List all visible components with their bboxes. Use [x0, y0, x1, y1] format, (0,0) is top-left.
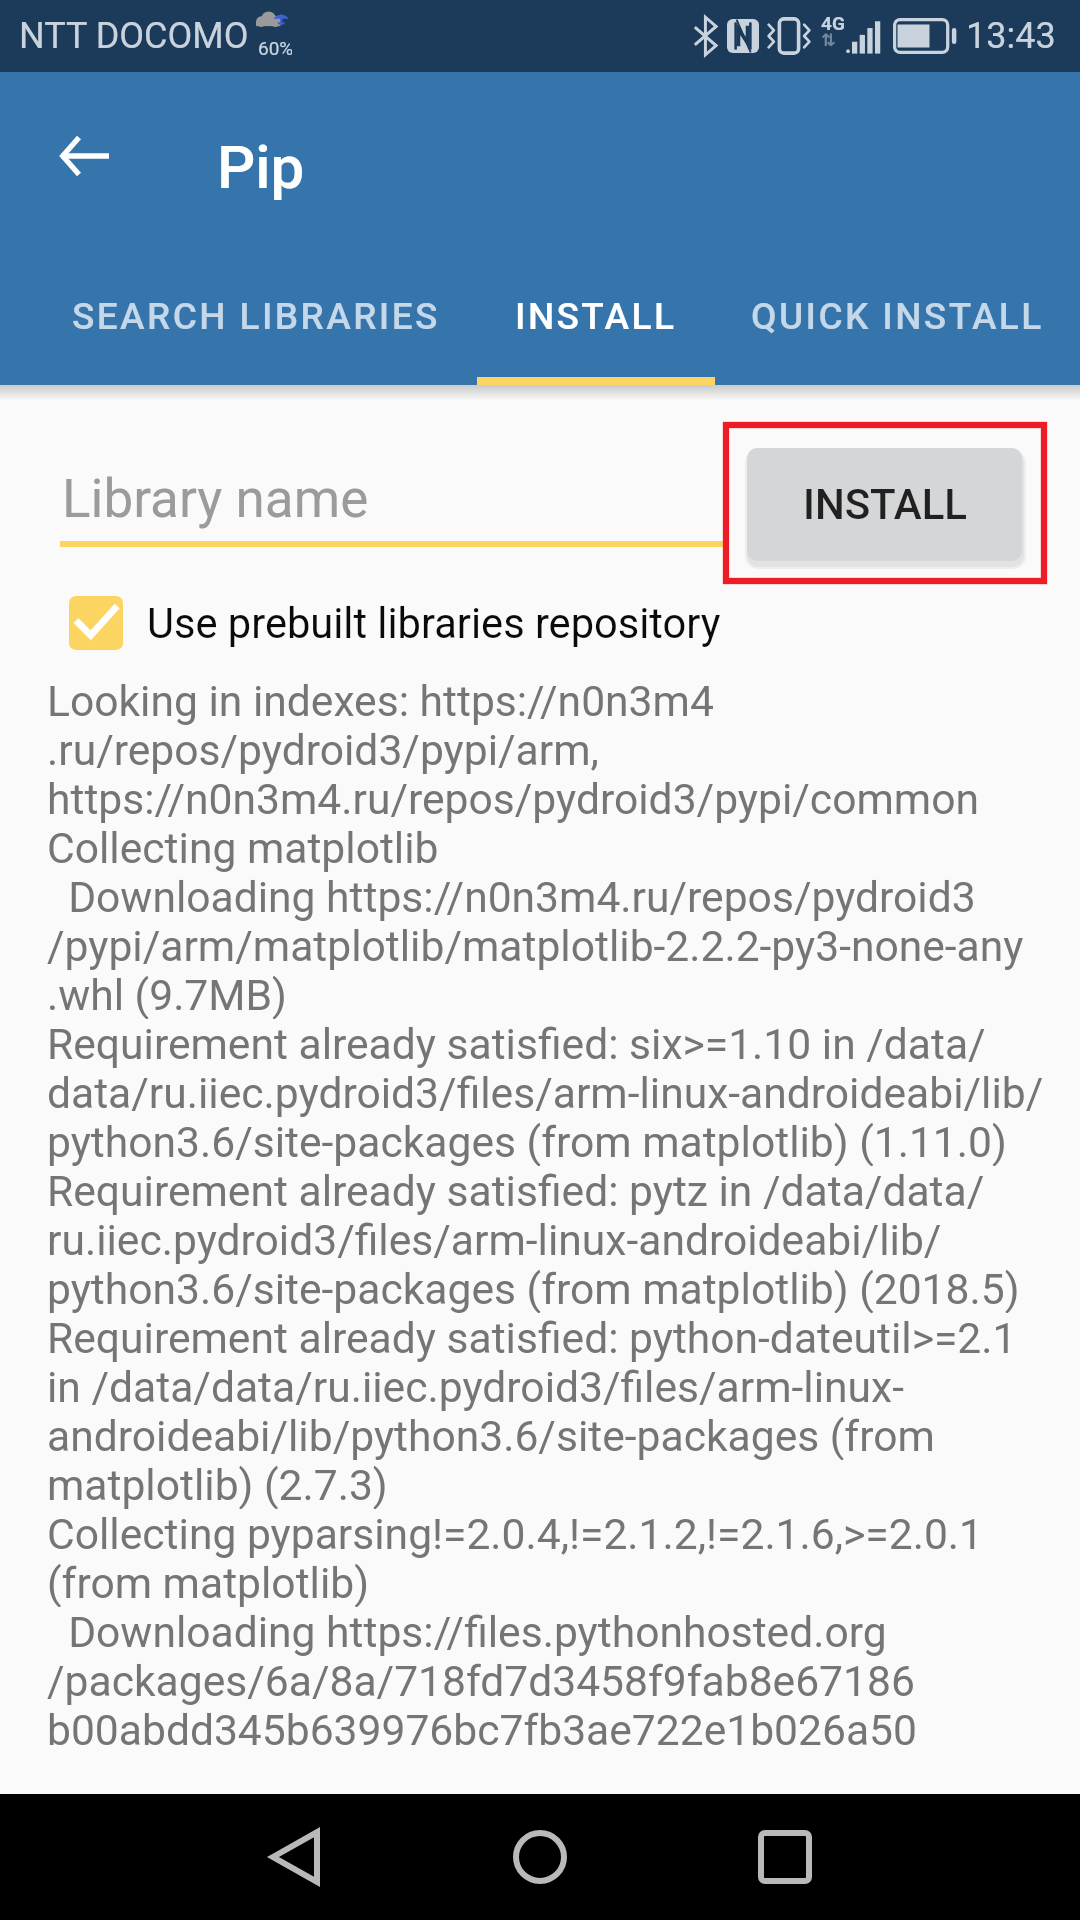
button[interactable]: QUICK INSTALL: [714, 252, 1080, 385]
staticText: INSTALL: [515, 295, 677, 338]
staticText: Library name: [62, 468, 369, 530]
staticText: Downloading https://files.pythonhosted.o…: [47, 1607, 887, 1656]
button[interactable]: Recent apps: [730, 1802, 840, 1912]
staticText: Collecting matplotlib: [47, 823, 439, 872]
staticText: 60%: [258, 37, 292, 59]
staticText: matplotlib) (2.7.3): [47, 1460, 388, 1509]
button[interactable]: Navigate up: [29, 101, 139, 211]
staticText: .ru/repos/pydroid3/pypi/arm,: [47, 725, 599, 774]
staticText: /pypi/arm/matplotlib/matplotlib-2.2.2-py…: [47, 921, 1024, 970]
button[interactable]: INSTALL: [747, 448, 1022, 561]
button[interactable]: SEARCH LIBRARIES: [33, 252, 479, 385]
button[interactable]: Back: [240, 1802, 350, 1912]
staticText: .whl (9.7MB): [47, 970, 287, 1019]
staticText: Collecting pyparsing!=2.0.4,!=2.1.2,!=2.…: [47, 1509, 984, 1558]
staticText: https://n0n3m4.ru/repos/pydroid3/pypi/co…: [47, 774, 979, 823]
staticText: Requirement already satisfied: python-da…: [47, 1313, 1017, 1362]
button[interactable]: Use prebuilt libraries repository: [69, 593, 721, 653]
staticText: data/ru.iiec.pydroid3/files/arm-linux-an…: [47, 1068, 1044, 1117]
button[interactable]: INSTALL: [477, 252, 715, 385]
staticText: python3.6/site-packages (from matplotlib…: [47, 1117, 1007, 1166]
staticText: ⇅: [821, 30, 836, 50]
staticText: (from matplotlib): [47, 1558, 370, 1607]
staticText: QUICK INSTALL: [751, 295, 1044, 338]
staticText: in /data/data/ru.iiec.pydroid3/files/arm…: [47, 1362, 904, 1411]
staticText: androideabi/lib/python3.6/site-packages …: [47, 1411, 935, 1460]
staticText: Use prebuilt libraries repository: [147, 599, 721, 648]
button[interactable]: Home: [485, 1802, 595, 1912]
staticText: SEARCH LIBRARIES: [72, 295, 440, 338]
staticText: b00abdd345b639976bc7fb3ae722e1b026a50: [47, 1705, 917, 1754]
staticText: Requirement already satisfied: pytz in /…: [47, 1166, 985, 1215]
staticText: /packages/6a/8a/718fd7d3458f9fab8e67186: [47, 1656, 915, 1705]
staticText: ru.iiec.pydroid3/files/arm-linux-android…: [47, 1215, 942, 1264]
staticText: Pip: [217, 132, 305, 202]
staticText: python3.6/site-packages (from matplotlib…: [47, 1264, 1020, 1313]
staticText: Downloading https://n0n3m4.ru/repos/pydr…: [47, 872, 976, 921]
staticText: Looking in indexes: https://n0n3m4: [47, 676, 714, 725]
staticText: 13:43: [966, 15, 1056, 57]
staticText: INSTALL: [803, 480, 967, 529]
staticText: NTT DOCOMO: [19, 15, 249, 57]
staticText: 4G: [821, 12, 845, 34]
staticText: Requirement already satisfied: six>=1.10…: [47, 1019, 986, 1068]
